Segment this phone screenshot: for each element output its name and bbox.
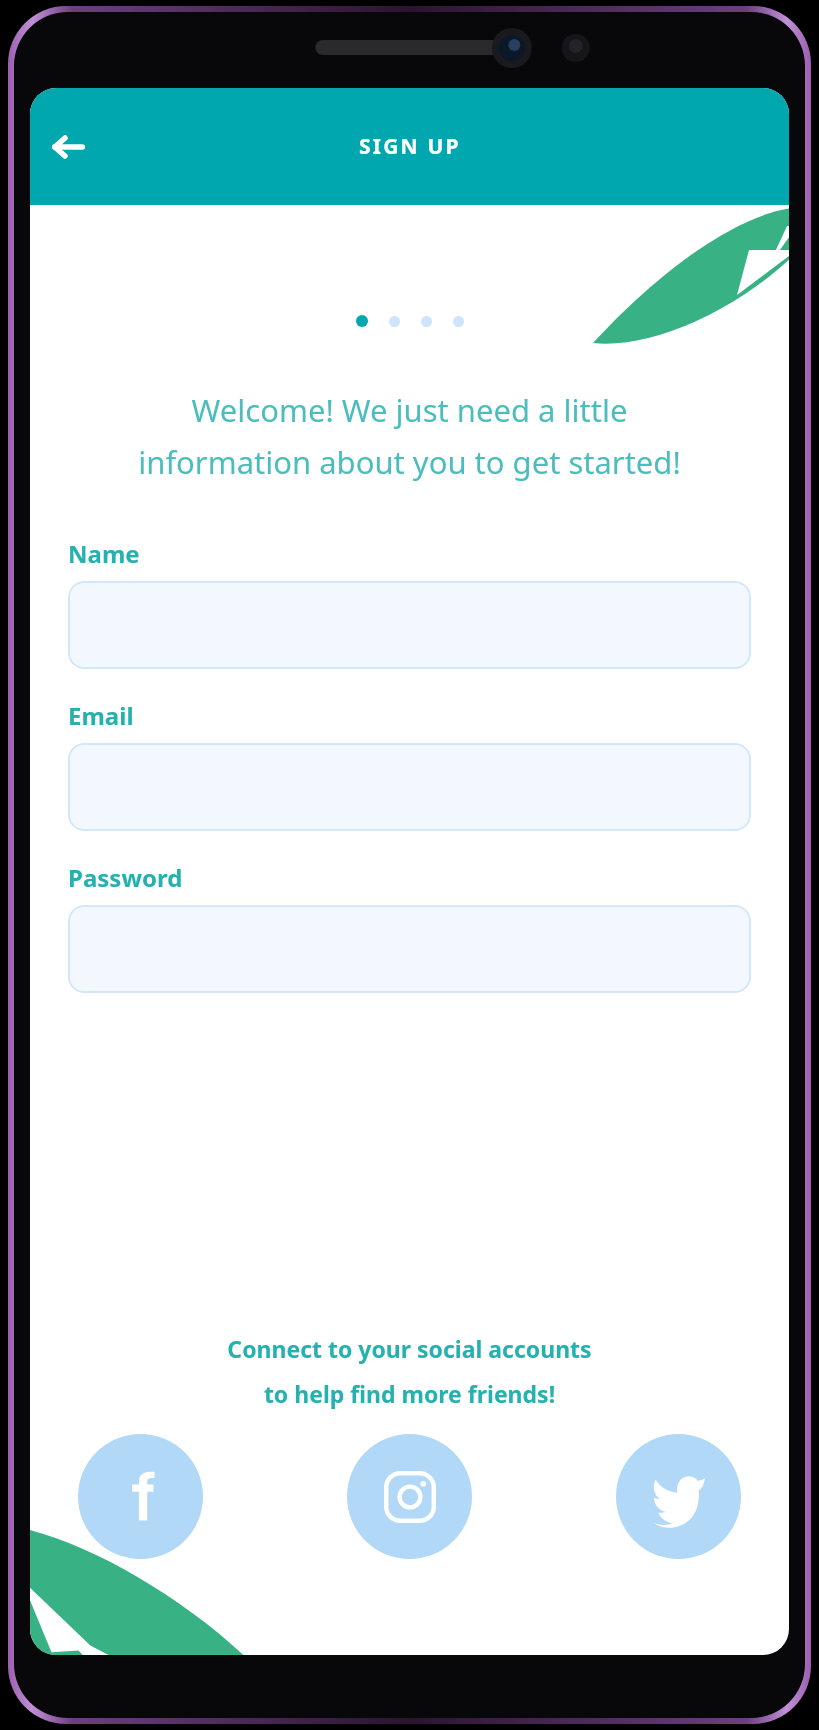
staticText: Name	[68, 537, 140, 570]
staticText: Connect to your social accounts to help …	[30, 1333, 789, 1410]
button[interactable]	[68, 581, 751, 669]
button[interactable]: Instagram	[347, 1434, 472, 1559]
button[interactable]: Facebook	[78, 1434, 203, 1559]
button[interactable]: Twitter	[616, 1434, 741, 1559]
button[interactable]	[68, 743, 751, 831]
staticText: SIGN UP	[359, 132, 461, 161]
staticText: Welcome! We just need a little informati…	[40, 389, 779, 483]
staticText: Password	[68, 861, 183, 894]
button[interactable]	[68, 905, 751, 993]
button[interactable]: Back	[36, 115, 100, 179]
staticText: Email	[68, 699, 134, 732]
